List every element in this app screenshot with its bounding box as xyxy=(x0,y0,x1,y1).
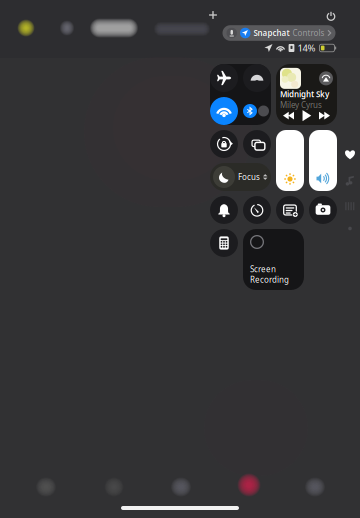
button[interactable]: Airplane Mode xyxy=(210,64,238,92)
button[interactable]: Brightness xyxy=(276,130,304,191)
button[interactable]: Screen Mirroring xyxy=(243,130,271,158)
button[interactable]: Notes xyxy=(276,196,304,224)
button[interactable]: Timer xyxy=(243,196,271,224)
button[interactable]: Play xyxy=(301,110,312,121)
staticText: Recording xyxy=(250,274,289,285)
button[interactable]: Previous xyxy=(283,112,294,119)
button[interactable]: Next xyxy=(319,112,330,119)
button[interactable]: Power xyxy=(325,10,336,21)
button[interactable]: Camera xyxy=(309,196,337,224)
button[interactable]: Calculator xyxy=(210,229,238,257)
button[interactable]: Snapchat xyxy=(222,25,335,41)
button[interactable]: Silent Mode xyxy=(210,196,238,224)
button[interactable]: Connectivity xyxy=(345,202,355,211)
button[interactable]: Home Controls xyxy=(345,150,355,160)
button[interactable]: Now Playing xyxy=(345,176,355,186)
staticText: Miley Cyrus xyxy=(280,99,322,110)
staticText: Midnight Sky xyxy=(280,89,329,99)
button[interactable]: Focus xyxy=(210,163,271,191)
staticText: Controls xyxy=(292,28,324,38)
button[interactable]: Rotation Lock xyxy=(210,130,238,158)
button[interactable]: Bluetooth xyxy=(243,97,271,125)
button[interactable]: Screen xyxy=(243,229,304,290)
staticText: 14% xyxy=(297,42,315,54)
button[interactable]: Wi-Fi xyxy=(210,97,238,125)
button[interactable]: Add Control xyxy=(209,11,217,19)
button[interactable]: AirPlay xyxy=(319,71,333,85)
staticText: Snapchat xyxy=(253,28,289,38)
button[interactable]: More Controls xyxy=(348,227,352,230)
button[interactable]: Volume xyxy=(309,130,337,191)
button[interactable]: AirDrop xyxy=(243,64,271,92)
staticText: Focus xyxy=(238,172,260,182)
staticText: Screen xyxy=(250,264,276,274)
